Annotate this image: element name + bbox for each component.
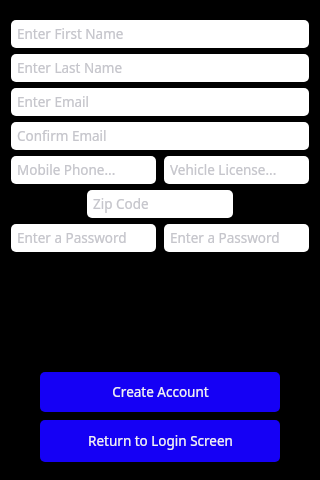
- button[interactable]: Enter a Password: [164, 224, 309, 252]
- staticText: Vehicle License...: [170, 161, 277, 179]
- button[interactable]: Mobile Phone...: [11, 156, 156, 184]
- staticText: Mobile Phone...: [17, 161, 116, 179]
- staticText: Enter Email: [17, 93, 90, 111]
- staticText: Enter a Password: [17, 229, 127, 247]
- button[interactable]: Enter Last Name: [11, 54, 309, 82]
- staticText: Create Account: [112, 383, 209, 401]
- button[interactable]: Enter Email: [11, 88, 309, 116]
- staticText: Confirm Email: [17, 127, 107, 145]
- staticText: Enter a Password: [170, 229, 280, 247]
- button[interactable]: Vehicle License...: [164, 156, 309, 184]
- button[interactable]: Create Account: [40, 372, 280, 412]
- staticText: Enter First Name: [17, 25, 124, 43]
- button[interactable]: Return to Login Screen: [40, 420, 280, 462]
- staticText: Return to Login Screen: [88, 432, 233, 450]
- button[interactable]: Enter First Name: [11, 20, 309, 48]
- button[interactable]: Confirm Email: [11, 122, 309, 150]
- button[interactable]: Enter a Password: [11, 224, 156, 252]
- button[interactable]: Zip Code: [87, 190, 233, 218]
- staticText: Zip Code: [93, 195, 149, 213]
- staticText: Enter Last Name: [17, 59, 122, 77]
